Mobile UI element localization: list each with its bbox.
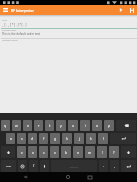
staticText: m	[88, 150, 92, 155]
staticText: Standard Output	[2, 39, 18, 42]
staticText: v	[54, 150, 56, 155]
button[interactable]: x	[28, 146, 37, 158]
staticText: ,[.,]*[.]*[.]	[2, 23, 27, 27]
button[interactable]: g	[50, 133, 60, 144]
staticText: n	[77, 150, 80, 155]
staticText: t	[49, 123, 51, 128]
button[interactable]: Back	[19, 172, 29, 182]
button[interactable]: i	[80, 120, 90, 131]
button[interactable]: Voice input	[40, 160, 49, 172]
button[interactable]: e	[23, 120, 32, 131]
button[interactable]: Emoji	[18, 160, 27, 172]
button[interactable]: Recent apps	[85, 172, 95, 182]
button[interactable]: !	[97, 146, 107, 158]
staticText: ,	[114, 164, 115, 168]
button[interactable]: a	[6, 133, 15, 144]
staticText: b	[65, 150, 68, 155]
button[interactable]: Run	[115, 5, 126, 15]
button[interactable]: Shift	[121, 146, 136, 158]
staticText: y	[60, 123, 62, 128]
button[interactable]: Shift	[1, 146, 15, 158]
button[interactable]: Enter	[110, 133, 136, 144]
button[interactable]: s	[17, 133, 26, 144]
staticText: s	[21, 136, 23, 141]
button[interactable]: Home	[63, 172, 73, 182]
button[interactable]: j	[74, 133, 84, 144]
staticText: i	[85, 123, 86, 128]
button[interactable]: y	[56, 120, 66, 131]
staticText: j	[79, 136, 80, 141]
staticText: c	[43, 150, 45, 155]
button[interactable]: Enter	[121, 160, 136, 172]
button[interactable]: Backspace	[116, 120, 136, 131]
staticText: .	[103, 164, 104, 168]
staticText: u	[72, 123, 75, 128]
button[interactable]: l	[98, 133, 108, 144]
button[interactable]: f	[39, 133, 48, 144]
button[interactable]: k	[86, 133, 96, 144]
button[interactable]: v	[50, 146, 59, 158]
button[interactable]: z	[17, 146, 26, 158]
button[interactable]: ,	[110, 160, 119, 172]
staticText: This is the default order text	[2, 32, 41, 36]
staticText: ?123	[6, 165, 11, 168]
staticText: q	[4, 123, 7, 128]
button[interactable]: q	[1, 120, 10, 131]
button[interactable]: n	[73, 146, 83, 158]
staticText: !	[102, 150, 103, 155]
staticText: l	[103, 136, 104, 141]
staticText: f	[43, 136, 45, 141]
button[interactable]: t	[45, 120, 54, 131]
staticText: e	[27, 123, 29, 128]
staticText: h	[66, 136, 69, 141]
staticText: Standard Input	[2, 29, 17, 32]
button[interactable]: /	[29, 160, 38, 172]
staticText: r	[38, 123, 40, 128]
staticText: Code	[2, 19, 7, 22]
button[interactable]: r	[34, 120, 43, 131]
button[interactable]: b	[61, 146, 71, 158]
staticText: a	[10, 136, 12, 141]
staticText: g	[54, 136, 57, 141]
staticText: w	[15, 123, 18, 128]
button[interactable]: p	[104, 120, 114, 131]
button[interactable]: o	[92, 120, 102, 131]
button[interactable]: Save	[126, 5, 137, 15]
staticText: k	[90, 136, 92, 141]
staticText: d	[31, 136, 34, 141]
button[interactable]: ?123	[1, 160, 16, 172]
button[interactable]: m	[85, 146, 95, 158]
staticText: BF Interpreter	[11, 8, 34, 13]
button[interactable]: h	[62, 133, 72, 144]
staticText: p	[108, 123, 111, 128]
button[interactable]: d	[28, 133, 37, 144]
button[interactable]: u	[68, 120, 78, 131]
button[interactable]: c	[39, 146, 48, 158]
button[interactable]: Navigation menu	[0, 5, 11, 15]
staticText: ?	[113, 150, 115, 155]
staticText: English	[70, 165, 79, 168]
staticText: z	[21, 150, 23, 155]
staticText: /	[33, 164, 35, 168]
staticText: o	[96, 123, 99, 128]
button[interactable]: ?	[109, 146, 119, 158]
staticText: x	[32, 150, 34, 155]
button[interactable]: .	[99, 160, 108, 172]
button[interactable]: w	[12, 120, 21, 131]
